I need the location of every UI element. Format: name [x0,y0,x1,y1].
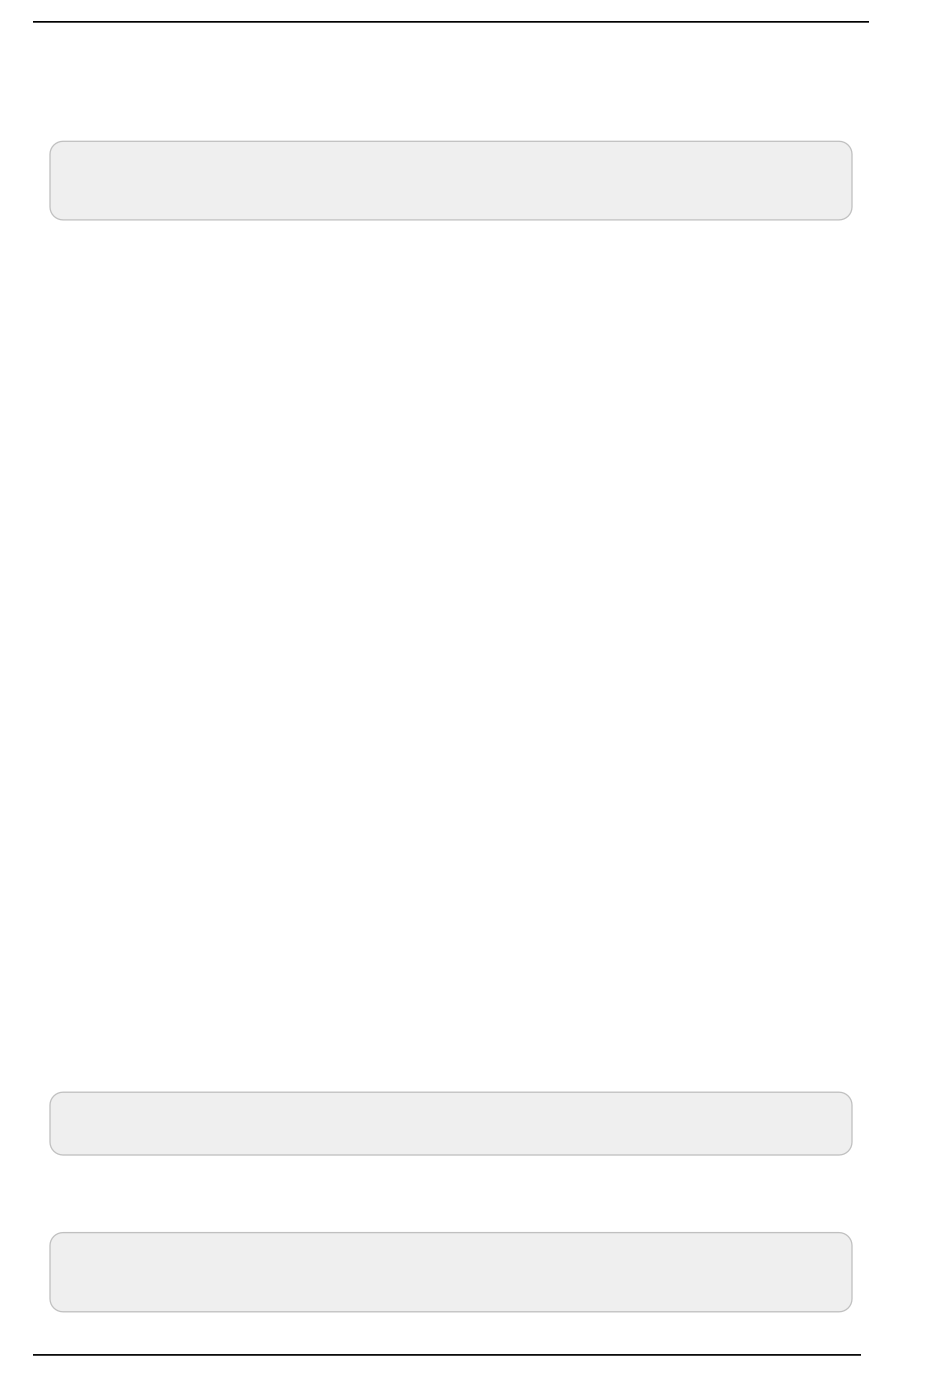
button[interactable]: Tertiary card [50,1233,852,1312]
button[interactable]: Secondary card [50,1092,852,1155]
button[interactable]: Primary card [50,141,852,220]
